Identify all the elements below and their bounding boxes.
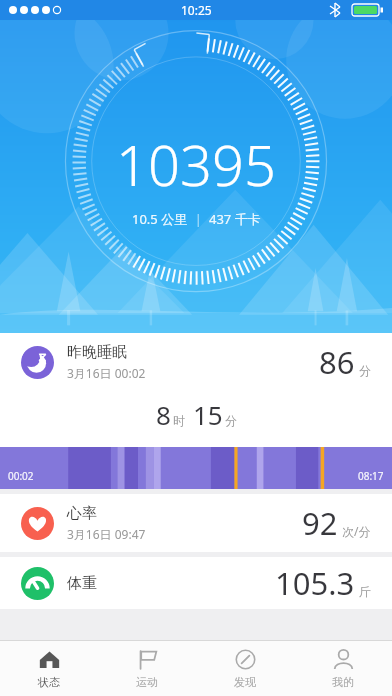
staticText: 10:25 [181, 2, 212, 18]
button[interactable]: 体重 [0, 557, 392, 609]
staticText: 心率 [67, 504, 97, 523]
staticText: 分 [225, 413, 237, 428]
staticText: 92 [302, 502, 338, 544]
button[interactable]: 运动 [98, 641, 196, 696]
staticText: 时 [173, 413, 185, 428]
staticText: 437 千卡 [209, 210, 261, 228]
staticText: 我的 [332, 675, 354, 689]
button[interactable]: 发现 [196, 641, 294, 696]
staticText: 分 [359, 363, 371, 378]
staticText: 3月16日 00:02 [67, 365, 146, 381]
button[interactable]: 状态 [0, 641, 98, 696]
staticText: 00:02 [8, 469, 34, 483]
staticText: | [188, 210, 209, 228]
staticText: 15 [193, 397, 223, 432]
button[interactable]: 我的 [294, 641, 392, 696]
button[interactable]: 心率 [0, 494, 392, 552]
staticText: 8 [156, 397, 171, 432]
staticText: 10395 [116, 126, 276, 202]
staticText: 10.5 公里 [132, 210, 188, 228]
staticText: 运动 [136, 675, 158, 689]
staticText: 次/分 [342, 523, 371, 539]
staticText: 发现 [234, 675, 256, 689]
button[interactable]: 昨晚睡眠 [0, 333, 392, 489]
staticText: 状态 [38, 675, 60, 689]
staticText: 105.3 [275, 562, 355, 604]
staticText: 08:17 [358, 469, 384, 483]
staticText: 体重 [67, 574, 97, 593]
staticText: 昨晚睡眠 [67, 343, 127, 362]
staticText: 3月16日 09:47 [67, 526, 146, 542]
staticText: 86 [319, 341, 355, 383]
staticText: 斤 [359, 584, 371, 599]
